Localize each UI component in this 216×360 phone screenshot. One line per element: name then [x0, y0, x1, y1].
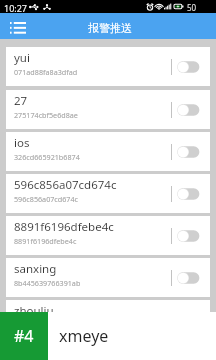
staticText: 8891f6196dfebe4c — [14, 236, 77, 246]
staticText: 报警推送 — [88, 21, 132, 35]
staticText: yui — [14, 50, 30, 66]
staticText: 9c7a54210dbb5f3e — [14, 320, 79, 330]
staticText: #4 — [14, 325, 34, 347]
button[interactable]: Toggle alarm push — [177, 61, 200, 73]
button[interactable]: Toggle alarm push — [177, 104, 200, 116]
button[interactable]: 27 — [6, 90, 210, 129]
button[interactable]: sanxing — [6, 258, 210, 297]
button[interactable]: zhouliu — [6, 300, 210, 339]
staticText: xmeye — [59, 325, 109, 347]
button[interactable]: Toggle alarm push — [177, 146, 200, 158]
staticText: 8b445639766391ab — [14, 278, 81, 288]
button[interactable]: Menu — [0, 13, 26, 39]
button[interactable]: yui — [6, 47, 210, 86]
staticText: 326cd665921b6874 — [14, 152, 80, 162]
button[interactable]: 8891f6196dfebe4c — [6, 216, 210, 255]
staticText: 8891f6196dfebe4c — [14, 219, 114, 235]
staticText: 10:27 — [4, 2, 28, 13]
staticText: 596c856a07cd674c — [14, 194, 79, 204]
staticText: 27 — [14, 93, 28, 109]
staticText: zhouliu — [14, 303, 54, 319]
staticText: 596c856a07cd674c — [14, 177, 117, 193]
button[interactable]: Toggle alarm push — [177, 188, 200, 200]
staticText: 071ad88fa8a3dfad — [14, 67, 78, 77]
staticText: sanxing — [14, 261, 57, 277]
button[interactable]: Toggle alarm push — [177, 230, 200, 242]
button[interactable]: Toggle alarm push — [177, 272, 200, 284]
staticText: 275174cbf5e6d8ae — [14, 110, 78, 120]
staticText: ios — [14, 135, 30, 151]
button[interactable]: ios — [6, 132, 210, 171]
button[interactable]: #4 — [0, 312, 48, 360]
staticText: 50 — [187, 2, 197, 13]
button[interactable]: 596c856a07cd674c — [6, 174, 210, 213]
